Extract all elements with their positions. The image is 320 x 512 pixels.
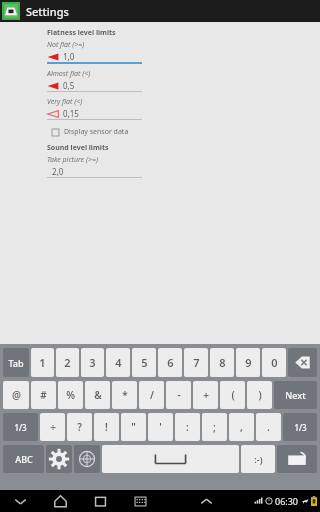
staticText: )	[258, 388, 262, 402]
staticText: Almost flat (<)	[47, 69, 91, 79]
staticText: 2	[64, 355, 71, 370]
staticText: '	[159, 420, 162, 434]
button[interactable]: ;	[202, 413, 227, 441]
button[interactable]: Backspace	[288, 348, 317, 377]
staticText: 0,5	[63, 80, 75, 91]
staticText: Not flat (>=)	[47, 40, 85, 50]
staticText: ,	[240, 420, 243, 434]
button[interactable]: Hide keyboard	[0, 490, 40, 512]
staticText: "	[131, 420, 136, 434]
button[interactable]: -	[166, 381, 191, 409]
button[interactable]: Attach image	[277, 445, 317, 473]
staticText: 3	[89, 355, 96, 370]
button[interactable]: Expand	[186, 490, 226, 512]
button[interactable]: ?	[67, 413, 92, 441]
staticText: ?	[77, 420, 82, 434]
staticText: Flatness level limits	[47, 28, 116, 38]
button[interactable]: )	[247, 381, 272, 409]
staticText: 8	[219, 355, 226, 370]
staticText: !	[105, 420, 108, 434]
button[interactable]: App icon	[2, 2, 20, 20]
staticText: &	[94, 388, 102, 402]
staticText: .	[267, 420, 270, 434]
staticText: ABC	[15, 453, 33, 465]
staticText: 1/3	[294, 422, 307, 433]
button[interactable]: Change language	[74, 445, 100, 473]
button[interactable]: ÷	[40, 413, 65, 441]
staticText: 06:30	[275, 495, 299, 507]
staticText: 6	[167, 355, 174, 370]
button[interactable]: Keyboard settings	[46, 445, 72, 473]
staticText: Tab	[8, 357, 24, 369]
button[interactable]: Space	[102, 445, 239, 473]
button[interactable]: 5	[132, 348, 156, 377]
button[interactable]: 4	[106, 348, 130, 377]
staticText: @	[12, 388, 21, 402]
button[interactable]: %	[58, 381, 83, 409]
staticText: #	[40, 388, 47, 402]
button[interactable]: 8	[210, 348, 234, 377]
staticText: 0	[271, 355, 278, 370]
button[interactable]: 1/3	[3, 413, 38, 441]
button[interactable]: Not flat (>=)	[47, 38, 308, 67]
button[interactable]: 0	[262, 348, 286, 377]
staticText: 7	[193, 355, 200, 370]
staticText: :-)	[254, 453, 263, 465]
button[interactable]: @	[3, 381, 29, 409]
staticText: %	[66, 388, 75, 402]
staticText: Very flat (<)	[47, 97, 83, 107]
button[interactable]: Switch keyboard	[120, 490, 160, 512]
staticText: +	[203, 388, 209, 402]
button[interactable]: !	[94, 413, 119, 441]
button[interactable]: Display sensor data	[47, 127, 308, 137]
staticText: 1	[39, 355, 46, 370]
staticText: 4	[115, 355, 122, 370]
button[interactable]: /	[139, 381, 164, 409]
button[interactable]: 1/3	[283, 413, 317, 441]
button[interactable]: &	[85, 381, 110, 409]
button[interactable]: Home	[40, 490, 80, 512]
staticText: ;	[213, 420, 216, 434]
button[interactable]: :-)	[241, 445, 275, 473]
staticText: 0,15	[63, 108, 79, 119]
button[interactable]: 7	[184, 348, 208, 377]
staticText: ÷	[50, 420, 56, 434]
button[interactable]: Almost flat (<)	[47, 67, 308, 95]
button[interactable]: "	[121, 413, 146, 441]
button[interactable]: ,	[229, 413, 254, 441]
button[interactable]: Take picture (>=)	[47, 153, 308, 181]
staticText: (	[231, 388, 235, 402]
button[interactable]: .	[256, 413, 281, 441]
button[interactable]: 6	[158, 348, 182, 377]
button[interactable]: Tab	[3, 348, 29, 377]
button[interactable]: #	[31, 381, 56, 409]
staticText: Display sensor data	[64, 127, 129, 137]
staticText: Settings	[26, 4, 69, 19]
button[interactable]: (	[220, 381, 245, 409]
button[interactable]: Next	[274, 381, 317, 409]
button[interactable]: Very flat (<)	[47, 95, 308, 123]
staticText: Next	[285, 389, 306, 401]
button[interactable]: +	[193, 381, 218, 409]
staticText: 1/3	[14, 422, 27, 433]
staticText: 1,0	[63, 51, 75, 62]
staticText: 2,0	[52, 166, 64, 177]
staticText: Sound level limits	[47, 143, 109, 153]
button[interactable]: '	[148, 413, 173, 441]
button[interactable]: *	[112, 381, 137, 409]
staticText: *	[122, 388, 128, 402]
button[interactable]: Recents	[80, 490, 120, 512]
staticText: -	[177, 388, 181, 402]
staticText: :	[186, 420, 189, 434]
button[interactable]: ABC	[3, 445, 44, 473]
button[interactable]: 2	[56, 348, 79, 377]
button[interactable]: 9	[236, 348, 260, 377]
staticText: Take picture (>=)	[47, 155, 98, 165]
staticText: /	[150, 388, 154, 402]
button[interactable]: :	[175, 413, 200, 441]
staticText: 9	[245, 355, 252, 370]
staticText: 5	[141, 355, 148, 370]
button[interactable]: 1	[31, 348, 54, 377]
button[interactable]: 3	[81, 348, 104, 377]
